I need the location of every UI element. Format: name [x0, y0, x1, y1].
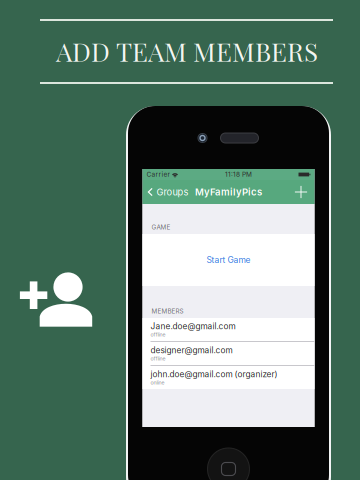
button[interactable]: Jane.doe@gmail.com — [142, 318, 314, 342]
staticText: offline — [150, 331, 165, 338]
button[interactable]: Add member — [289, 180, 314, 204]
staticText: Jane.doe@gmail.com — [150, 321, 235, 331]
button[interactable]: Groups — [142, 180, 192, 204]
staticText: GAME — [151, 223, 170, 231]
staticText: MEMBERS — [151, 307, 183, 315]
button[interactable]: designer@gmail.com — [142, 342, 314, 366]
staticText: Carrier — [146, 171, 169, 178]
button[interactable]: Start Game — [142, 234, 314, 286]
staticText: john.doe@gmail.com (organizer) — [150, 369, 277, 379]
staticText: MyFamilyPics — [195, 186, 262, 198]
staticText: ADD TEAM MEMBERS — [56, 34, 318, 68]
staticText: offline — [150, 355, 165, 362]
staticText: Groups — [156, 186, 188, 198]
staticText: online — [150, 379, 164, 386]
staticText: 11:18 PM — [225, 171, 252, 178]
staticText: designer@gmail.com — [150, 345, 232, 355]
staticText: Start Game — [206, 255, 250, 265]
button[interactable]: john.doe@gmail.com (organizer) — [142, 366, 314, 389]
